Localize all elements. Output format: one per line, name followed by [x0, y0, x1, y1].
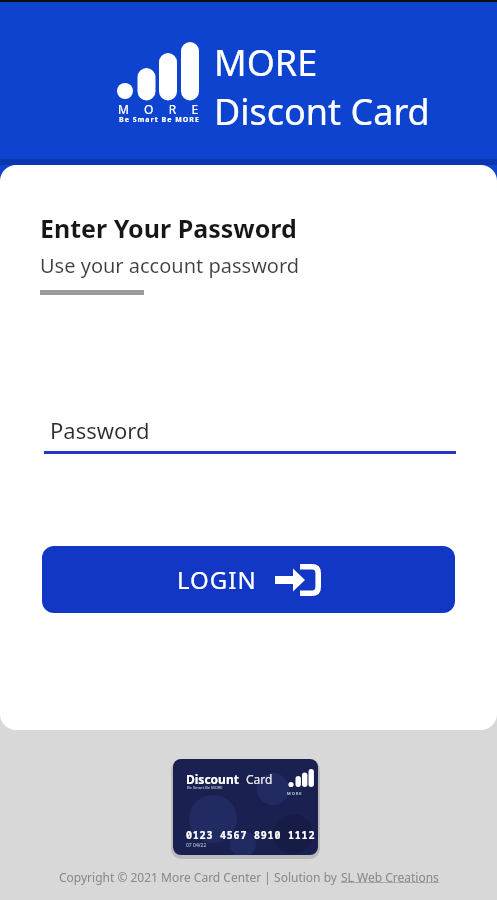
button[interactable]: SL Web Creations	[341, 869, 439, 885]
staticText: Be Smart Be MORE	[187, 785, 223, 790]
button[interactable]: Password	[44, 395, 457, 457]
staticText: Password	[50, 415, 150, 445]
staticText: Be Smart Be MORE	[119, 115, 200, 125]
staticText: Discount	[186, 771, 239, 787]
staticText: 07 04/22	[186, 842, 207, 849]
staticText: M O R E	[118, 101, 202, 117]
staticText: Card	[246, 771, 273, 787]
staticText: MORE	[214, 38, 318, 87]
staticText: Discont Card	[214, 87, 430, 136]
staticText: LOGIN	[177, 563, 257, 596]
staticText: Enter Your Password	[40, 211, 297, 245]
staticText: Copyright © 2021 More Card Center | Solu…	[59, 869, 341, 885]
staticText: Use your account password	[40, 252, 300, 279]
staticText: 0123 4567 8910 1112	[186, 828, 316, 842]
staticText: M O R E	[287, 791, 302, 796]
button[interactable]: LOGIN	[42, 546, 455, 613]
